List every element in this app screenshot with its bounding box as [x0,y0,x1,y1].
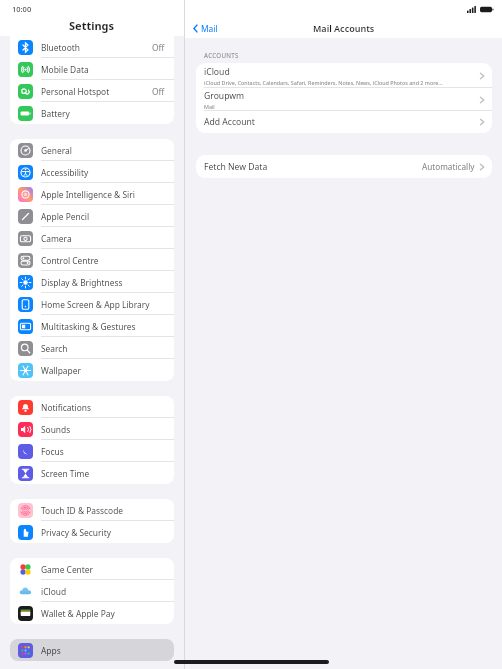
staticText: Bluetooth [41,42,152,53]
button[interactable]: Notifications [10,396,174,418]
button[interactable]: Battery [10,102,174,124]
staticText: Mobile Data [41,64,165,75]
button[interactable]: Home Screen & App Library [10,293,174,315]
button[interactable]: Focus [10,440,174,462]
button[interactable]: Wallet & Apple Pay [10,602,174,624]
staticText: Accessibility [41,167,165,178]
staticText: Camera [41,233,165,244]
staticText: iCloud [204,66,230,78]
staticText: ACCOUNTS [204,51,239,59]
button[interactable]: Touch ID & Passcode [10,499,174,521]
staticText: Apple Intelligence & Siri [41,189,165,200]
staticText: Touch ID & Passcode [41,505,165,516]
button[interactable]: Search [10,337,174,359]
staticText: Privacy & Security [41,527,165,538]
staticText: Wallet & Apple Pay [41,608,165,619]
button[interactable]: Screen Time [10,462,174,484]
staticText: Sounds [41,424,165,435]
staticText: Apps [41,645,165,656]
staticText: Groupwm [204,90,245,102]
button[interactable]: Fetch New Data [196,155,492,178]
button[interactable]: Privacy & Security [10,521,174,543]
button[interactable]: General [10,139,174,161]
button[interactable]: Apple Intelligence & Siri [10,183,174,205]
staticText: Mail Accounts [313,22,375,34]
staticText: Mail [204,103,215,110]
staticText: Wallpaper [41,365,165,376]
staticText: Game Center [41,564,165,575]
staticText: Fetch New Data [204,161,268,173]
staticText: Home Screen & App Library [41,299,165,310]
button[interactable]: Accessibility [10,161,174,183]
staticText: Off [152,86,165,97]
staticText: Apple Pencil [41,211,165,222]
staticText: 10:00 [12,4,32,14]
button[interactable]: Personal Hotspot [10,80,174,102]
staticText: Automatically [422,161,475,172]
staticText: iCloud [41,586,165,597]
staticText: Add Account [204,116,255,128]
button[interactable]: iCloud [196,63,492,88]
button[interactable]: Display & Brightness [10,271,174,293]
staticText: General [41,145,165,156]
button[interactable]: Groupwm [196,88,492,111]
button[interactable]: Apps [10,639,174,661]
staticText: Screen Time [41,468,165,479]
button[interactable]: Camera [10,227,174,249]
button[interactable]: Bluetooth [10,36,174,58]
staticText: Mail [201,23,218,34]
staticText: Settings [69,18,115,33]
staticText: Multitasking & Gestures [41,321,165,332]
button[interactable]: Sounds [10,418,174,440]
staticText: Display & Brightness [41,277,165,288]
staticText: Search [41,343,165,354]
staticText: iCloud Drive, Contacts, Calendars, Safar… [204,79,443,86]
staticText: Focus [41,446,165,457]
button[interactable]: Wallpaper [10,359,174,381]
button[interactable]: Game Center [10,558,174,580]
button[interactable]: Apple Pencil [10,205,174,227]
staticText: Personal Hotspot [41,86,152,97]
button[interactable]: Add Account [196,111,492,133]
button[interactable]: Multitasking & Gestures [10,315,174,337]
button[interactable]: Control Centre [10,249,174,271]
staticText: Battery [41,108,165,119]
button[interactable]: Mobile Data [10,58,174,80]
staticText: Control Centre [41,255,165,266]
button[interactable]: Mail [191,21,220,36]
staticText: Notifications [41,402,165,413]
button[interactable]: iCloud [10,580,174,602]
staticText: Off [152,42,165,53]
